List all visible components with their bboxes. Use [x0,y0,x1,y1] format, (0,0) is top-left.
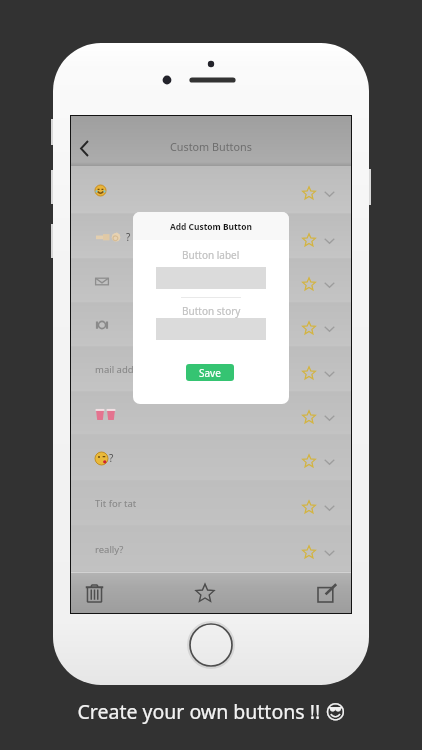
button[interactable] [71,259,351,303]
button[interactable]: ? [71,435,351,481]
button[interactable]: Tit for tat [71,481,351,526]
button[interactable]: New button [303,573,351,613]
button[interactable]: really? [71,526,351,572]
staticText: Button story [182,304,241,318]
staticText: Create your own buttons !! 😎 [77,698,346,725]
staticText: really? [95,543,124,556]
button[interactable]: ? [71,214,351,259]
button[interactable] [71,166,351,214]
button[interactable]: Back [69,131,99,165]
staticText: ? [126,230,131,244]
button[interactable]: Delete [71,573,118,613]
button[interactable] [71,303,351,347]
staticText: Button label [182,248,240,262]
button[interactable]: mail add [71,347,351,392]
button[interactable]: Save [186,364,234,381]
staticText: Tit for tat [95,497,137,510]
staticText: ? [109,451,114,465]
staticText: Custom Buttons [170,139,252,154]
button[interactable]: Favorites [181,573,229,613]
staticText: mail add [95,363,134,376]
staticText: Add Custom Button [170,221,252,232]
button[interactable] [71,392,351,435]
staticText: Save [199,366,221,380]
